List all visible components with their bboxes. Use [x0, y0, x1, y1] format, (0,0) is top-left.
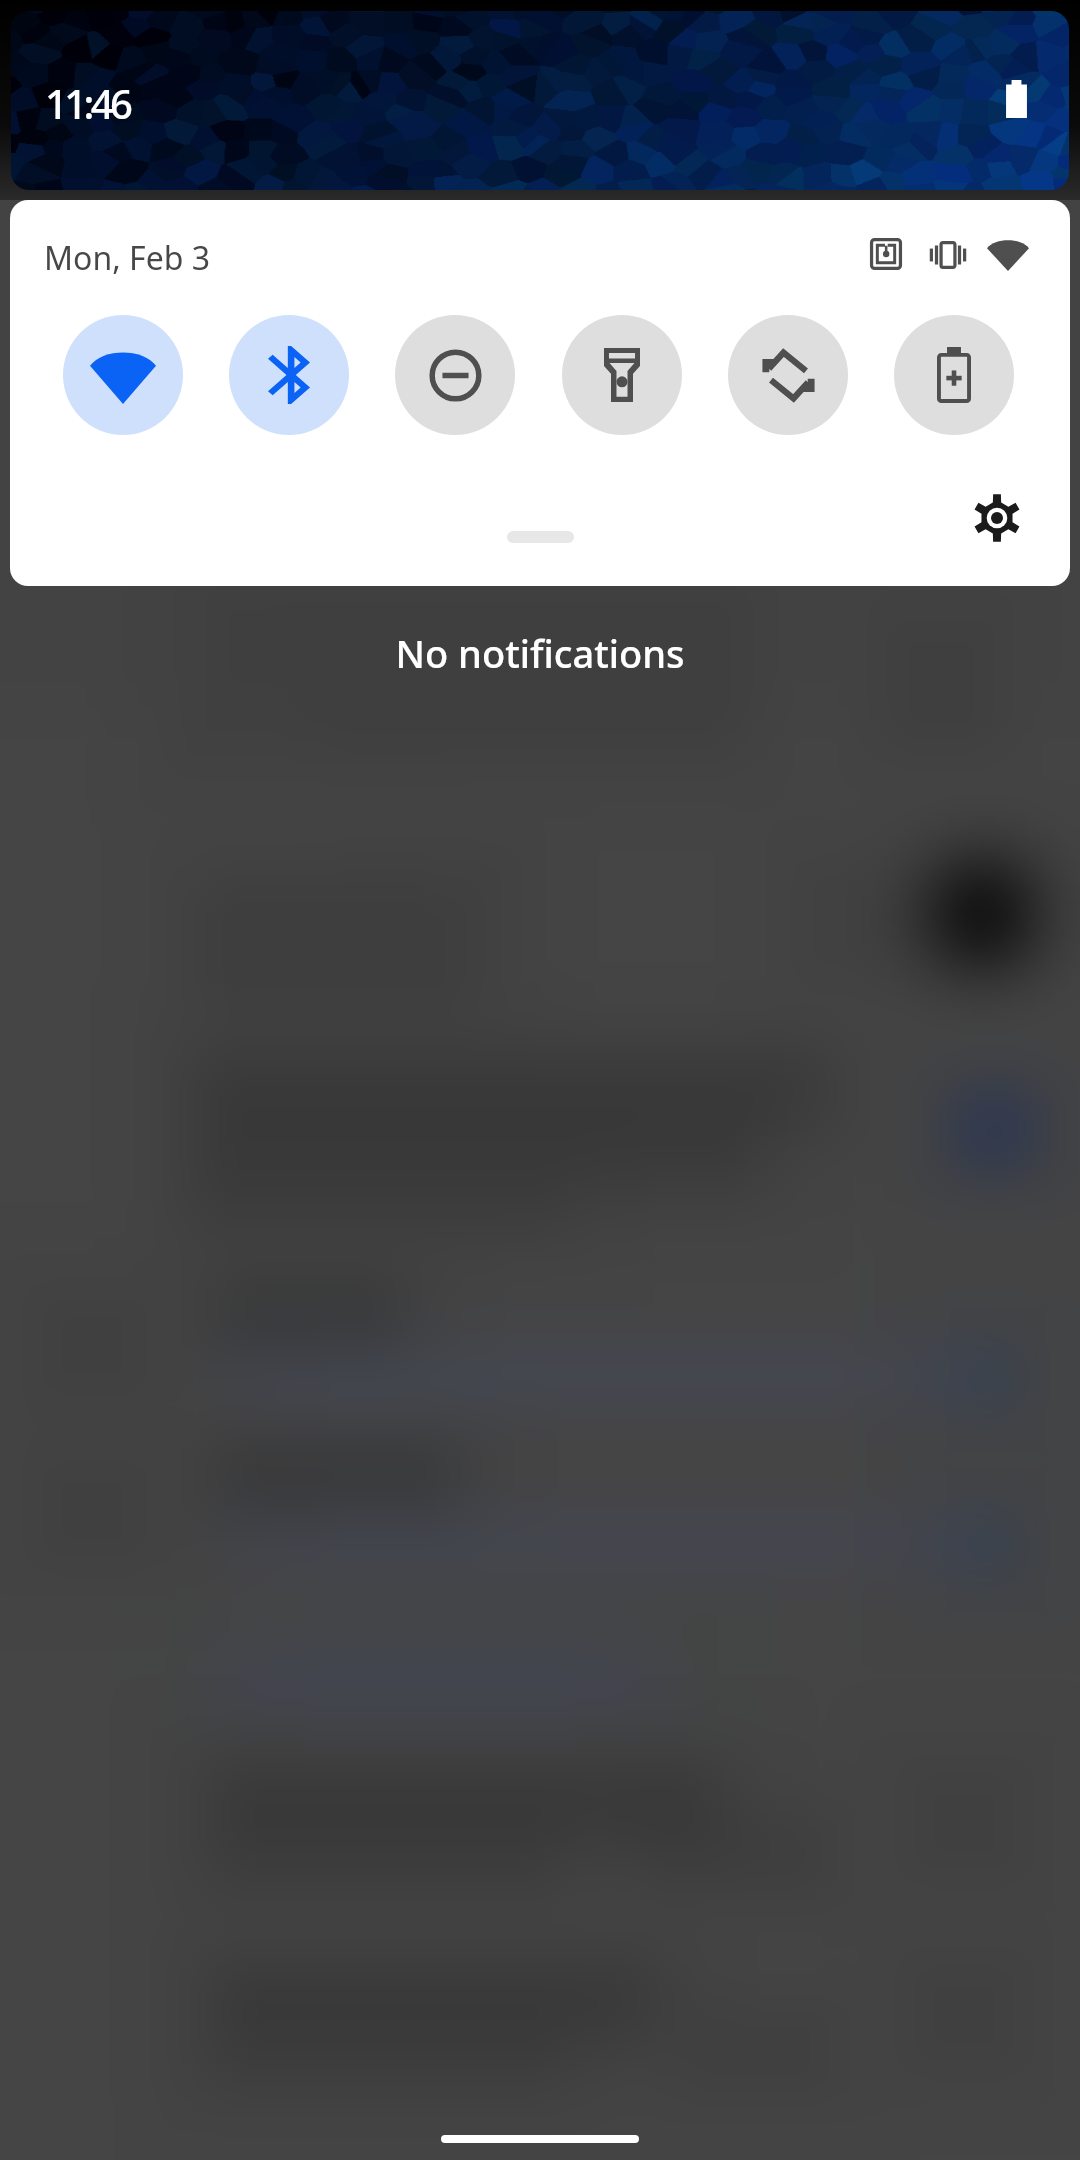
staticText: No notifications [0, 627, 1080, 679]
button[interactable]: Expand quick settings [450, 500, 630, 572]
staticText: Mon, Feb 3 [44, 236, 211, 280]
button[interactable] [229, 315, 349, 435]
button[interactable] [728, 315, 848, 435]
button[interactable] [395, 315, 515, 435]
staticText: 11:46 [45, 76, 130, 130]
button[interactable] [63, 315, 183, 435]
button[interactable] [894, 315, 1014, 435]
button[interactable] [562, 315, 682, 435]
button[interactable]: Settings [969, 490, 1025, 546]
